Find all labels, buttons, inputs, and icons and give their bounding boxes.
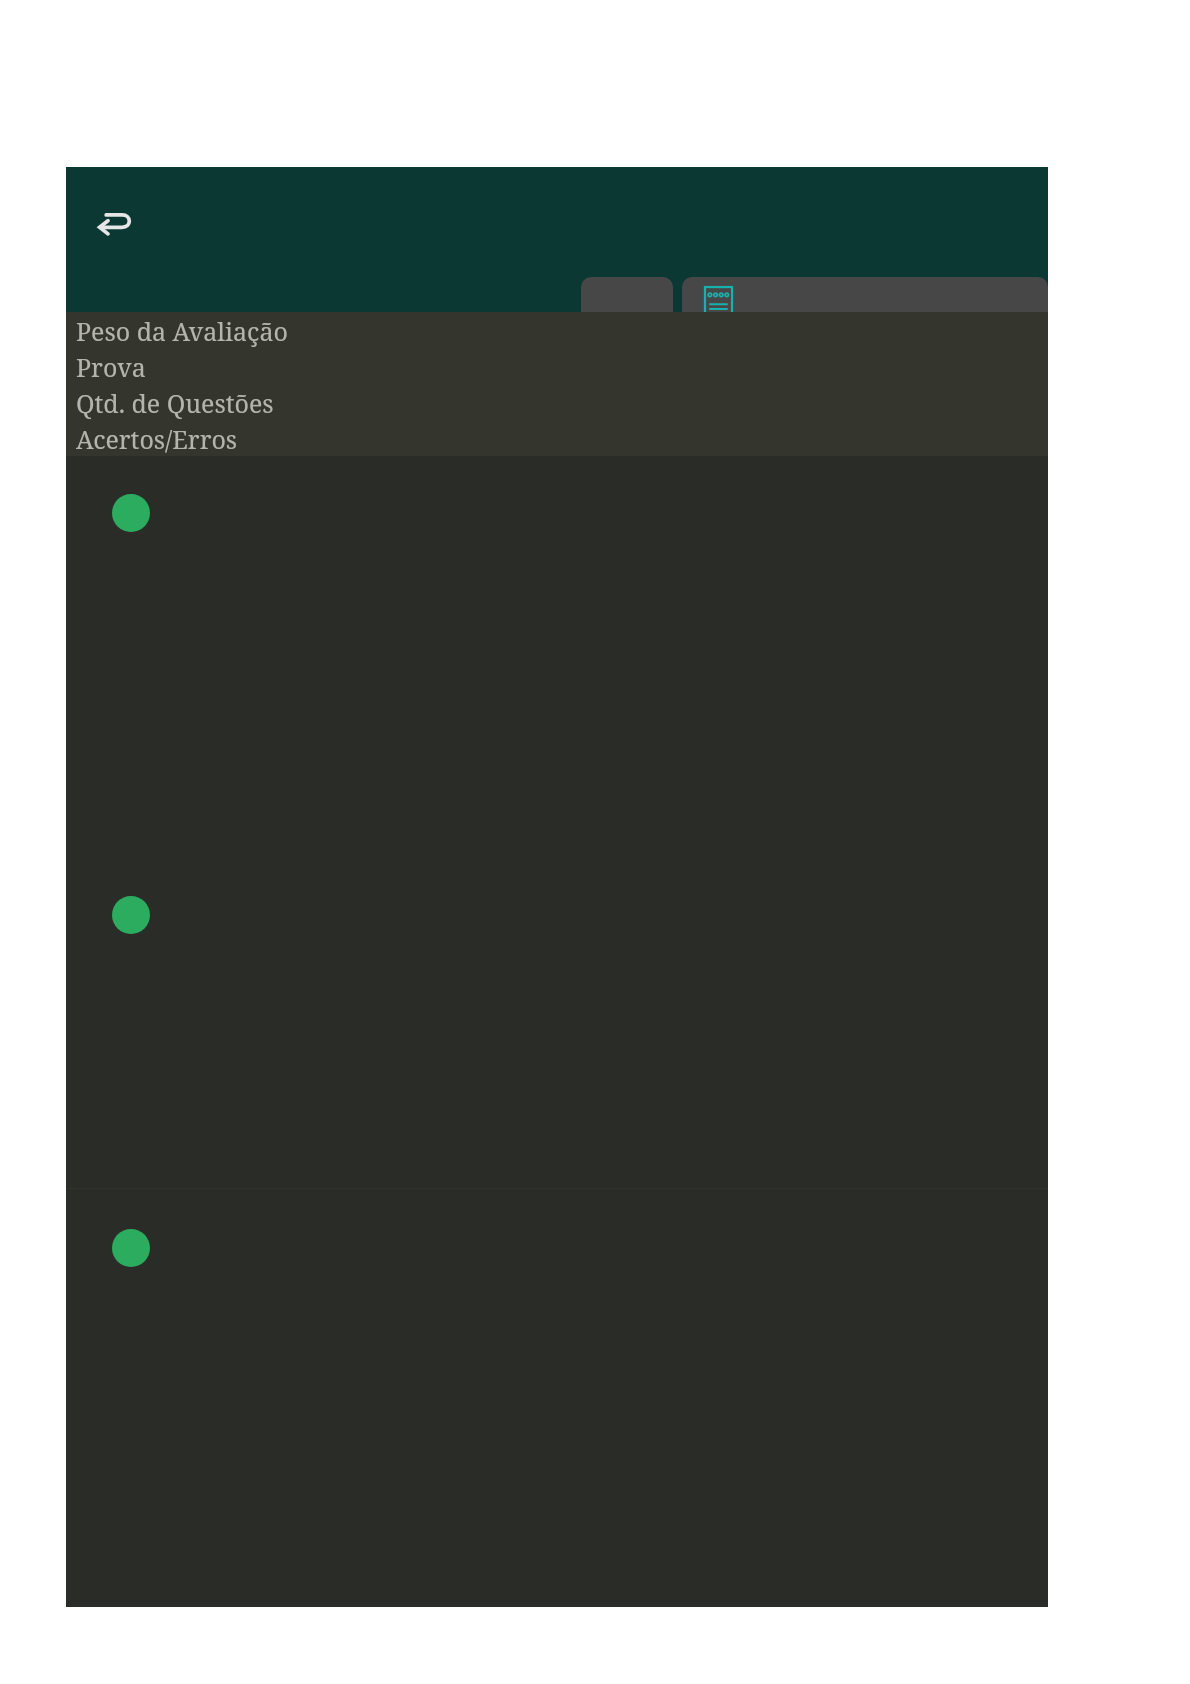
button[interactable]	[66, 876, 1048, 1188]
button[interactable]: Filter	[581, 277, 673, 334]
staticText: Peso da Avaliação	[76, 314, 288, 348]
staticText: Qtd. de Questões	[76, 386, 274, 420]
button[interactable]: Back	[86, 193, 144, 251]
button[interactable]	[66, 1189, 1048, 1569]
staticText: Acertos/Erros	[76, 422, 238, 455]
button[interactable]: Open notes	[682, 277, 1048, 334]
staticText: Prova	[76, 350, 146, 384]
button[interactable]	[66, 456, 1048, 876]
